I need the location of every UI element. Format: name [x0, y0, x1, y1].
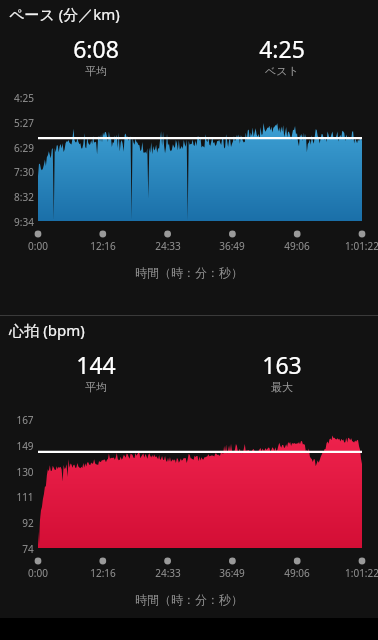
staticText: 12:16 [90, 566, 116, 580]
staticText: 平均 [85, 380, 107, 394]
staticText: 0:00 [28, 239, 48, 253]
staticText: 4:25 [259, 33, 305, 64]
staticText: 1:01:22 [345, 566, 378, 580]
staticText: 心拍 (bpm) [9, 320, 85, 340]
staticText: 0:00 [28, 566, 48, 580]
staticText: ペース (分／km) [9, 4, 120, 24]
staticText: 144 [76, 349, 116, 380]
staticText: 7:30 [14, 165, 34, 179]
staticText: 5:27 [14, 116, 34, 130]
staticText: 1:01:22 [345, 239, 378, 253]
staticText: 時間（時：分：秒） [135, 265, 243, 280]
staticText: 167 [16, 413, 34, 427]
staticText: 最大 [271, 380, 293, 394]
staticText: 36:49 [219, 239, 245, 253]
staticText: 49:06 [284, 566, 310, 580]
staticText: 9:34 [14, 215, 34, 229]
staticText: 4:25 [14, 91, 34, 105]
staticText: 平均 [85, 64, 107, 78]
staticText: 130 [16, 465, 34, 479]
staticText: 24:33 [155, 239, 181, 253]
staticText: 6:29 [14, 141, 34, 155]
staticText: 74 [22, 542, 34, 556]
button[interactable]: ペース (分／km) [0, 0, 378, 316]
staticText: 163 [262, 349, 302, 380]
staticText: 49:06 [284, 239, 310, 253]
staticText: 24:33 [155, 566, 181, 580]
staticText: ベスト [265, 64, 299, 78]
staticText: 時間（時：分：秒） [135, 592, 243, 607]
staticText: 92 [22, 516, 34, 530]
staticText: 6:08 [73, 33, 119, 64]
staticText: 8:32 [14, 190, 34, 204]
staticText: 149 [16, 439, 34, 453]
staticText: 36:49 [219, 566, 245, 580]
staticText: 111 [16, 490, 34, 504]
staticText: 12:16 [90, 239, 116, 253]
button[interactable]: 心拍 (bpm) [0, 316, 378, 618]
